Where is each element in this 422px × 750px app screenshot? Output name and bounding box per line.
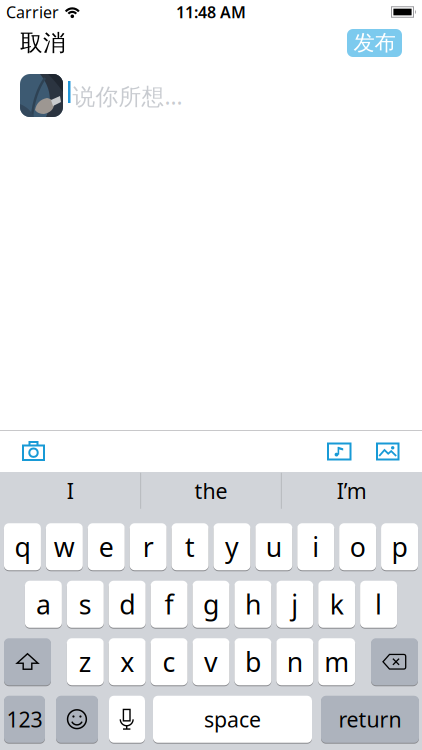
staticText: u <box>266 529 282 564</box>
button[interactable]: p <box>381 523 418 570</box>
staticText: x <box>120 644 134 679</box>
button[interactable]: Add photo <box>376 442 422 460</box>
staticText: return <box>338 705 401 733</box>
staticText: 说你所想... <box>72 81 182 111</box>
button[interactable]: 123 <box>4 696 45 743</box>
button[interactable]: c <box>151 638 188 685</box>
button[interactable]: f <box>151 581 188 628</box>
button[interactable]: Shift <box>4 638 51 685</box>
button[interactable]: I <box>0 469 140 513</box>
staticText: 123 <box>6 705 42 733</box>
button[interactable]: u <box>255 523 292 570</box>
staticText: f <box>165 586 174 622</box>
staticText: 发布 <box>353 30 395 56</box>
button[interactable]: 发布 <box>347 29 402 57</box>
button[interactable]: Delete <box>371 638 418 685</box>
button[interactable]: z <box>67 638 104 685</box>
button[interactable]: l <box>360 581 397 628</box>
staticText: l <box>375 586 382 622</box>
button[interactable]: r <box>130 523 167 570</box>
button[interactable]: y <box>213 523 250 570</box>
button[interactable]: a <box>25 581 62 628</box>
button[interactable]: n <box>276 638 313 685</box>
staticText: c <box>163 644 176 679</box>
staticText: b <box>245 644 261 679</box>
staticText: space <box>204 705 261 733</box>
staticText: I <box>67 477 74 505</box>
button[interactable]: d <box>109 581 146 628</box>
staticText: t <box>185 529 195 564</box>
button[interactable]: Camera <box>0 442 45 461</box>
button[interactable]: v <box>192 638 229 685</box>
button[interactable]: Add music <box>327 442 352 460</box>
button[interactable]: g <box>192 581 229 628</box>
staticText: 取消 <box>20 29 66 57</box>
staticText: e <box>99 529 114 564</box>
staticText: n <box>287 644 303 679</box>
staticText: r <box>143 529 154 564</box>
staticText: q <box>14 529 30 564</box>
staticText: j <box>291 586 298 622</box>
staticText: the <box>194 477 227 505</box>
staticText: a <box>36 586 51 622</box>
staticText: Carrier <box>6 1 59 23</box>
staticText: k <box>330 586 344 622</box>
staticText: p <box>391 529 407 564</box>
staticText: z <box>79 644 92 679</box>
button[interactable]: Emoji <box>56 696 98 743</box>
button[interactable]: q <box>4 523 41 570</box>
button[interactable]: t <box>171 523 208 570</box>
staticText: y <box>225 529 239 564</box>
staticText: 11:48 AM <box>176 1 246 23</box>
button[interactable]: k <box>318 581 355 628</box>
button[interactable]: I’m <box>282 469 422 513</box>
staticText: I’m <box>337 477 367 505</box>
button[interactable]: return <box>321 696 419 743</box>
button[interactable]: i <box>297 523 334 570</box>
button[interactable]: h <box>234 581 271 628</box>
staticText: v <box>204 644 218 679</box>
staticText: h <box>245 586 261 622</box>
staticText: m <box>324 644 349 679</box>
button[interactable]: x <box>109 638 146 685</box>
staticText: g <box>203 586 219 622</box>
button[interactable]: space <box>153 696 312 743</box>
button[interactable]: e <box>88 523 125 570</box>
staticText: o <box>350 529 366 564</box>
button[interactable]: 取消 <box>20 29 66 57</box>
button[interactable]: o <box>339 523 376 570</box>
staticText: w <box>54 529 75 564</box>
button[interactable]: s <box>67 581 104 628</box>
button[interactable]: Dictate <box>109 696 145 743</box>
button[interactable]: w <box>46 523 83 570</box>
button[interactable]: m <box>318 638 355 685</box>
staticText: i <box>312 529 319 564</box>
staticText: s <box>79 586 92 622</box>
button[interactable]: b <box>234 638 271 685</box>
button[interactable]: the <box>141 469 281 513</box>
button[interactable]: j <box>276 581 313 628</box>
staticText: d <box>119 586 135 622</box>
